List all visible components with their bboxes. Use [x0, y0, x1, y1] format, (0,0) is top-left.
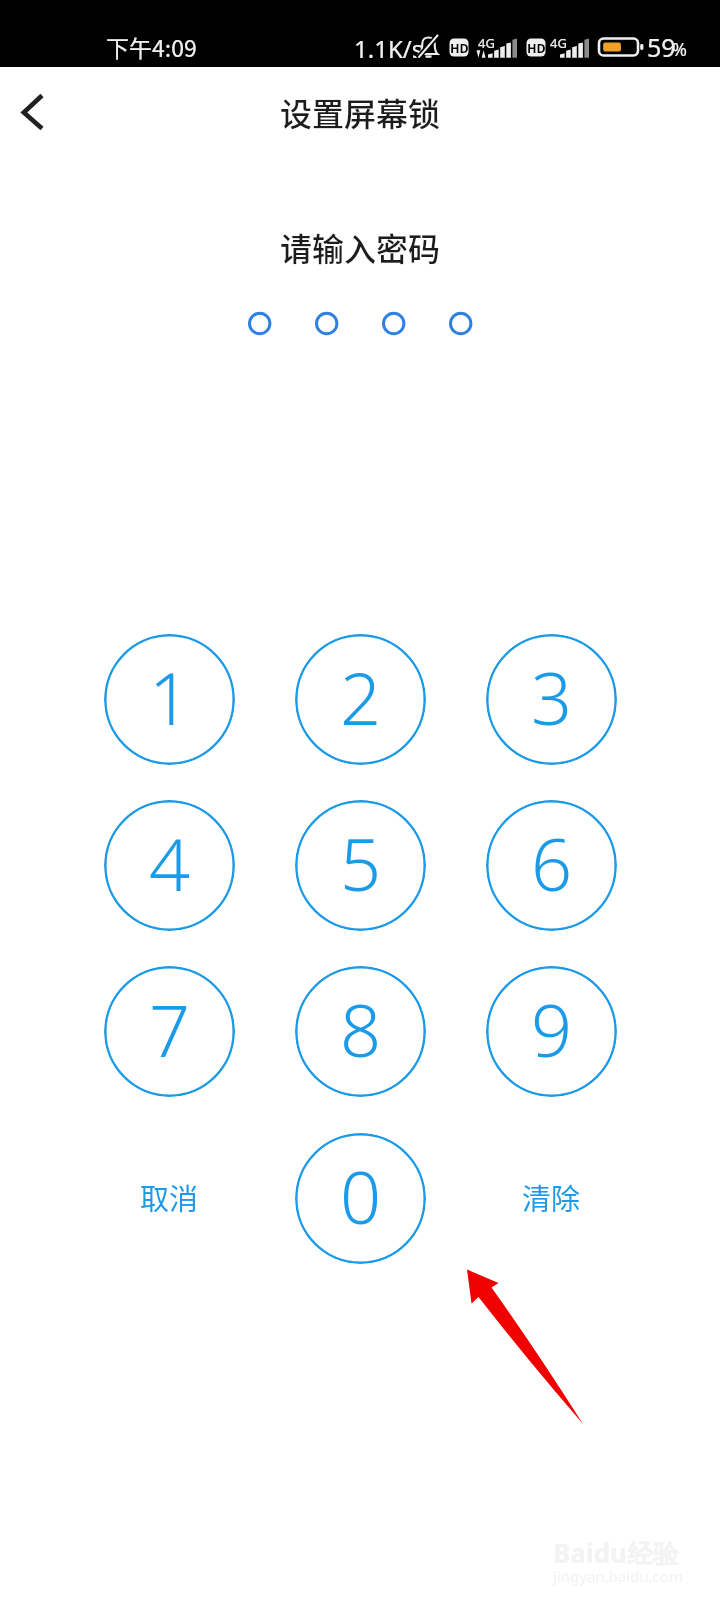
- staticText: 清除: [522, 1176, 581, 1218]
- button[interactable]: Cancel: [109, 1165, 229, 1231]
- button[interactable]: 8: [295, 966, 426, 1097]
- staticText: HD: [527, 40, 546, 57]
- staticText: 0: [340, 1147, 382, 1245]
- staticText: 59: [647, 30, 676, 64]
- staticText: 6: [531, 814, 573, 912]
- button[interactable]: 0: [295, 1133, 426, 1264]
- staticText: HD: [450, 40, 469, 57]
- staticText: 4G: [478, 34, 495, 52]
- staticText: 4G: [550, 34, 567, 52]
- staticText: %: [672, 37, 687, 62]
- staticText: 4: [149, 814, 191, 912]
- staticText: 2: [340, 648, 382, 746]
- button[interactable]: 3: [486, 634, 617, 765]
- button[interactable]: Back: [0, 83, 62, 145]
- button[interactable]: 5: [295, 800, 426, 931]
- staticText: 1: [149, 648, 191, 746]
- staticText: 下午4:09: [106, 30, 197, 63]
- staticText: Baidu经验: [553, 1535, 679, 1571]
- button[interactable]: 2: [295, 634, 426, 765]
- staticText: 3: [531, 648, 573, 746]
- button[interactable]: Clear: [491, 1165, 611, 1231]
- staticText: 1.1K/s: [354, 32, 424, 65]
- button[interactable]: 9: [486, 966, 617, 1097]
- staticText: 取消: [140, 1176, 199, 1218]
- button[interactable]: 6: [486, 800, 617, 931]
- staticText: jingyan.baidu.com: [553, 1566, 683, 1586]
- button[interactable]: 1: [104, 634, 235, 765]
- staticText: 9: [531, 980, 573, 1078]
- staticText: 5: [340, 814, 382, 912]
- button[interactable]: 7: [104, 966, 235, 1097]
- staticText: 7: [149, 980, 191, 1078]
- button[interactable]: 4: [104, 800, 235, 931]
- staticText: 请输入密码: [0, 224, 720, 270]
- staticText: 8: [340, 980, 382, 1078]
- staticText: 设置屏幕锁: [280, 89, 441, 135]
